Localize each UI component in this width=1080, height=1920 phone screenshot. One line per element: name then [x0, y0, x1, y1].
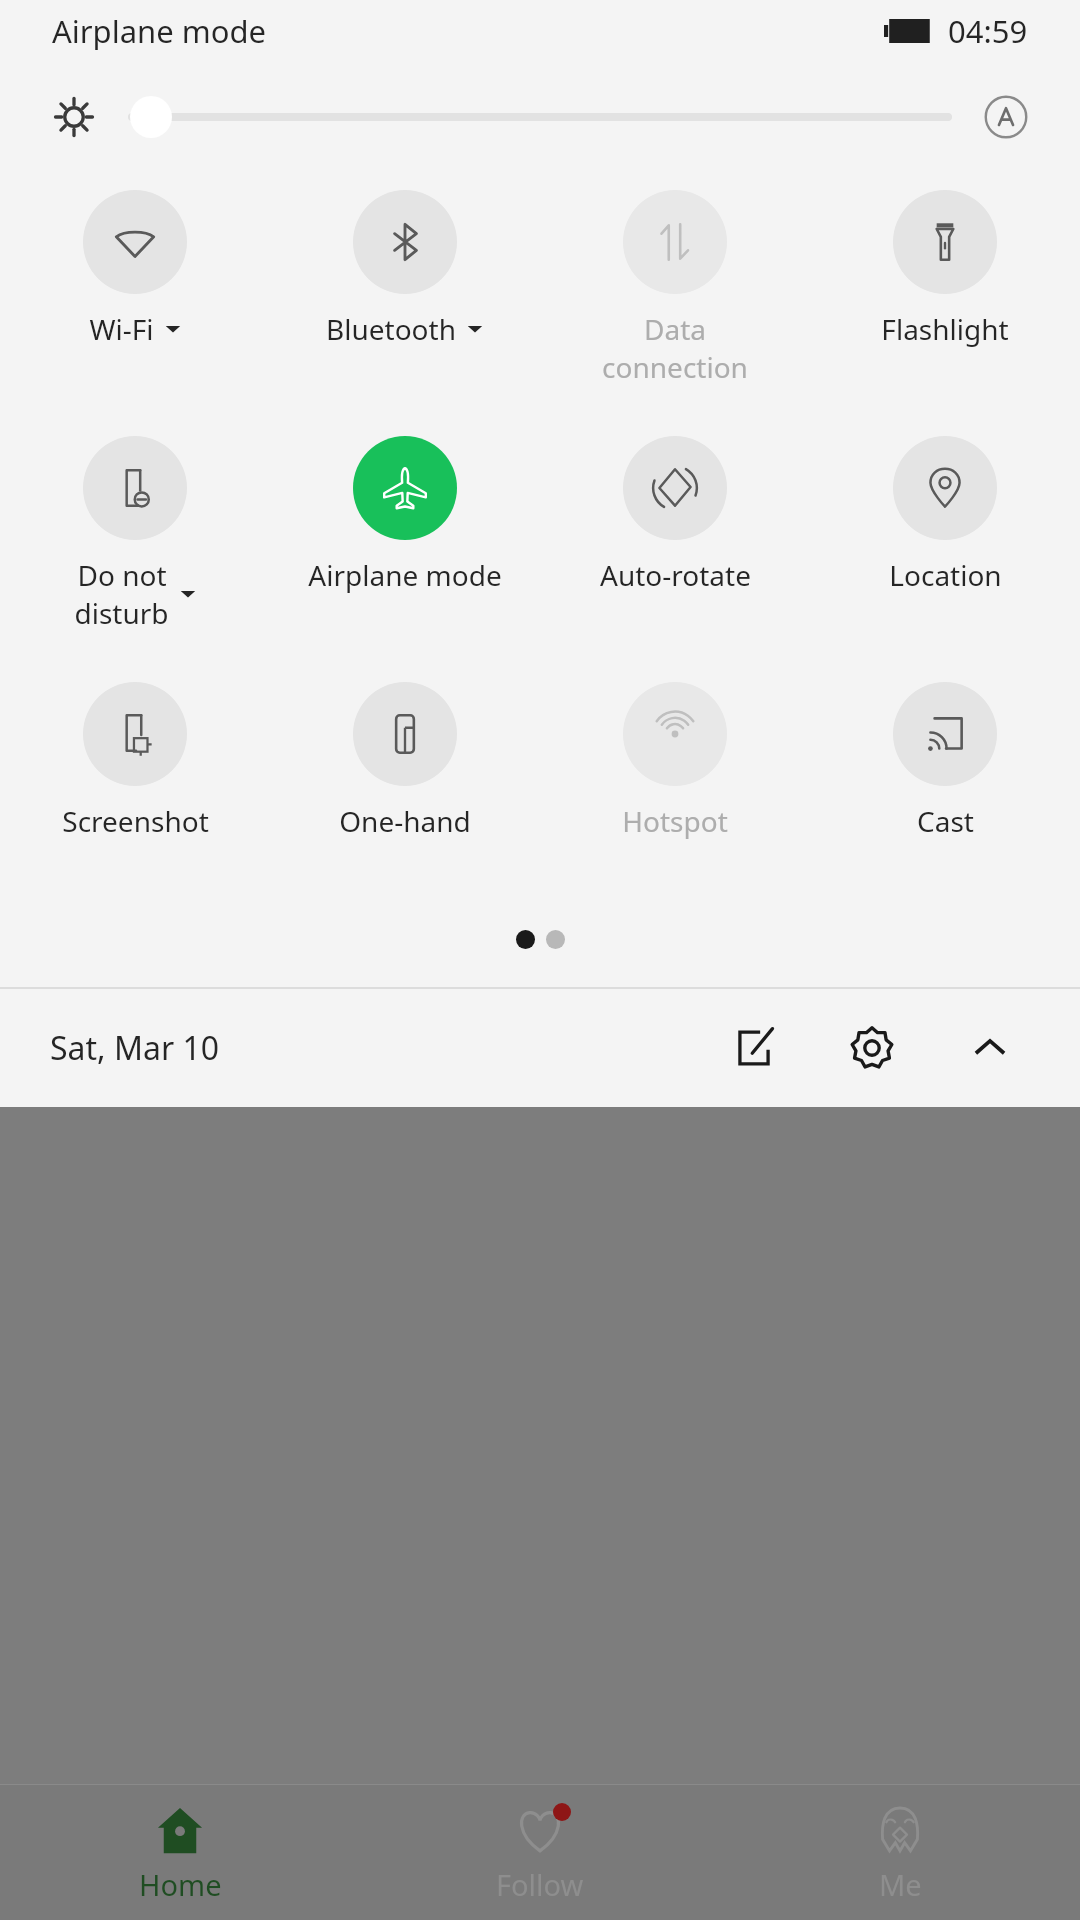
button[interactable]: Location [810, 436, 1080, 594]
staticText: Follow [496, 1865, 584, 1904]
button[interactable]: Auto-rotate [540, 436, 810, 594]
staticText: connection [602, 348, 748, 386]
staticText: Sat, Mar 10 [50, 1026, 220, 1070]
button[interactable]: Edit [714, 1008, 794, 1088]
staticText: 04:59 [948, 10, 1028, 52]
staticText: Screenshot [62, 802, 209, 840]
button[interactable]: Wi-Fi [0, 190, 270, 348]
staticText: Location [889, 556, 1002, 594]
staticText: Cast [917, 802, 974, 840]
staticText: Flashlight [881, 310, 1009, 348]
button[interactable]: One-hand [270, 682, 540, 840]
staticText: disturb [74, 594, 169, 632]
staticText: Do not [77, 556, 167, 594]
button[interactable] [128, 89, 952, 145]
staticText: Home [139, 1865, 222, 1904]
button[interactable]: Follow [360, 1791, 720, 1914]
button[interactable]: Auto brightness [978, 89, 1034, 145]
staticText: Airplane mode [52, 10, 267, 52]
button[interactable]: Brightness [46, 89, 102, 145]
staticText: Hotspot [622, 802, 728, 840]
staticText: Me [879, 1865, 922, 1904]
button[interactable]: Flashlight [810, 190, 1080, 348]
button[interactable]: Hotspot [540, 682, 810, 840]
staticText: Airplane mode [308, 556, 502, 594]
button[interactable]: Airplane mode [270, 436, 540, 594]
button[interactable]: Do not [0, 436, 270, 632]
button[interactable]: Home [0, 1791, 360, 1914]
staticText: One-hand [339, 802, 471, 840]
staticText: Wi-Fi [89, 310, 154, 348]
button[interactable]: Data [540, 190, 810, 386]
button[interactable]: Cast [810, 682, 1080, 840]
button[interactable]: Collapse [950, 1008, 1030, 1088]
staticText: Auto-rotate [600, 556, 751, 594]
button[interactable]: Screenshot [0, 682, 270, 840]
button[interactable]: Settings [832, 1008, 912, 1088]
staticText: Data [644, 310, 706, 348]
staticText: Bluetooth [326, 310, 456, 348]
button[interactable]: Bluetooth [270, 190, 540, 348]
